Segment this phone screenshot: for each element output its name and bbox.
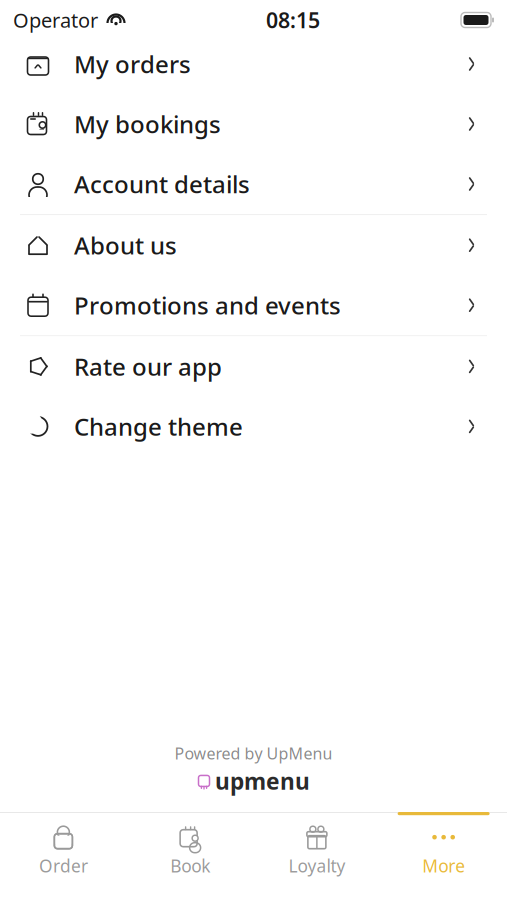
- button[interactable]: My orders: [0, 34, 507, 94]
- button[interactable]: Order: [0, 812, 127, 900]
- staticText: Rate our app: [74, 350, 222, 382]
- button[interactable]: About us: [0, 215, 507, 275]
- button[interactable]: Book: [127, 812, 254, 900]
- staticText: My orders: [74, 48, 191, 80]
- staticText: About us: [74, 229, 177, 261]
- staticText: Account details: [74, 168, 250, 200]
- staticText: Order: [39, 854, 88, 877]
- staticText: 08:15: [266, 6, 320, 34]
- button[interactable]: Rate our app: [0, 336, 507, 396]
- staticText: More: [422, 854, 465, 877]
- button[interactable]: My bookings: [0, 94, 507, 154]
- staticText: Loyalty: [288, 854, 345, 877]
- button[interactable]: Promotions and events: [0, 275, 507, 335]
- staticText: upmenu: [215, 766, 310, 796]
- button[interactable]: Change theme: [0, 396, 507, 456]
- staticText: Powered by UpMenu: [174, 743, 332, 764]
- staticText: My bookings: [74, 108, 221, 140]
- staticText: Change theme: [74, 410, 243, 442]
- button[interactable]: More: [380, 812, 507, 900]
- staticText: Promotions and events: [74, 289, 341, 321]
- staticText: Book: [170, 854, 210, 877]
- button[interactable]: Account details: [0, 154, 507, 214]
- button[interactable]: Loyalty: [253, 812, 380, 900]
- staticText: Operator: [13, 7, 98, 33]
